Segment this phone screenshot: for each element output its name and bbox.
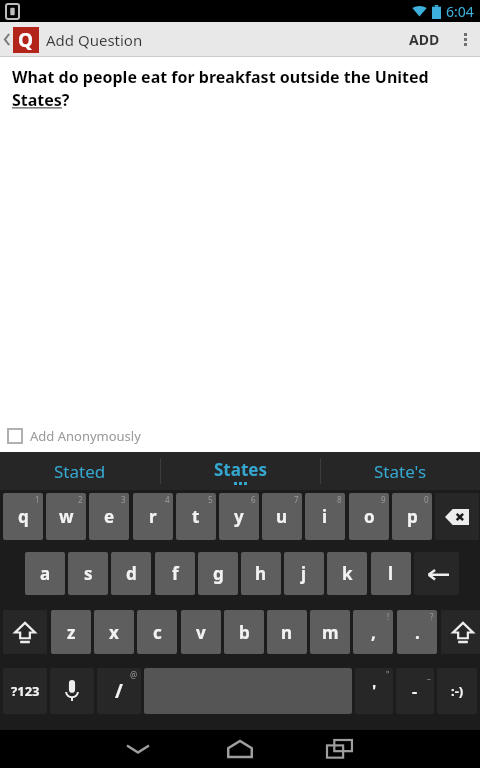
staticText: 8 <box>337 494 342 505</box>
staticText: / <box>115 678 123 704</box>
staticText: :-) <box>451 682 464 700</box>
button[interactable]: u <box>262 493 302 540</box>
button[interactable]: l <box>371 552 411 595</box>
staticText: Add Question <box>46 30 143 50</box>
button[interactable]: v <box>181 610 221 654</box>
button[interactable]: j <box>284 552 324 595</box>
button[interactable]: y <box>219 493 259 540</box>
button[interactable]: Shift <box>441 610 480 654</box>
staticText: States <box>214 458 267 481</box>
staticText: j <box>301 562 307 585</box>
staticText: m <box>322 621 339 644</box>
button[interactable]: h <box>241 552 281 595</box>
button[interactable]: Backspace <box>435 493 479 540</box>
staticText: d <box>126 562 137 585</box>
button[interactable]: Voice input <box>50 668 94 714</box>
button[interactable]: f <box>155 552 195 595</box>
staticText: y <box>234 505 244 528</box>
staticText: s <box>84 562 93 585</box>
staticText: Stated <box>54 460 106 483</box>
button[interactable]: i <box>305 493 345 540</box>
button[interactable]: w <box>46 493 86 540</box>
staticText: 5 <box>208 494 213 505</box>
button[interactable]: State's <box>320 452 480 490</box>
button[interactable]: b <box>224 610 264 654</box>
staticText: q <box>18 505 29 528</box>
staticText: _ <box>427 669 431 680</box>
button[interactable]: c <box>137 610 177 654</box>
staticText: z <box>67 621 76 644</box>
staticText: Add Anonymously <box>30 427 141 445</box>
button[interactable]: x <box>94 610 134 654</box>
staticText: @ <box>130 669 138 680</box>
staticText: p <box>407 505 418 528</box>
button[interactable]: g <box>198 552 238 595</box>
button[interactable]: p <box>392 493 432 540</box>
staticText: g <box>213 562 224 585</box>
staticText: u <box>276 505 288 528</box>
staticText: What do people eat for breakfast outside… <box>12 66 462 111</box>
button[interactable]: ADD <box>409 30 440 49</box>
button[interactable]: / <box>97 668 141 714</box>
button[interactable]: Hide keyboard <box>108 730 168 768</box>
button[interactable]: k <box>327 552 367 595</box>
button[interactable]: r <box>133 493 173 540</box>
staticText: " <box>386 669 390 680</box>
staticText: ? <box>430 611 434 622</box>
staticText: c <box>153 621 162 644</box>
button[interactable]: t <box>176 493 216 540</box>
button[interactable]: :-) <box>437 668 477 714</box>
button[interactable]: Add Anonymously <box>0 424 480 448</box>
staticText: f <box>172 562 179 585</box>
staticText: 1 <box>35 494 40 505</box>
staticText: t <box>192 505 200 528</box>
button[interactable]: Quora <box>13 27 39 53</box>
staticText: 6:04 <box>446 2 474 21</box>
staticText: h <box>255 562 267 585</box>
button[interactable]: z <box>51 610 91 654</box>
button[interactable]: Recent apps <box>310 730 370 768</box>
staticText: i <box>322 505 328 528</box>
button[interactable]: Back <box>0 22 14 57</box>
staticText: 9 <box>381 494 386 505</box>
staticText: ' <box>372 680 377 702</box>
staticText: l <box>388 562 394 585</box>
button[interactable]: States <box>160 452 320 490</box>
button[interactable]: ' <box>355 668 393 714</box>
staticText: 6 <box>251 494 256 505</box>
staticText: . <box>415 621 420 644</box>
button[interactable]: Shift <box>3 610 47 654</box>
staticText: o <box>364 505 375 528</box>
button[interactable]: . <box>397 610 437 654</box>
button[interactable]: ?123 <box>3 668 47 714</box>
button[interactable]: e <box>89 493 129 540</box>
staticText: k <box>342 562 353 585</box>
button[interactable]: s <box>68 552 108 595</box>
button[interactable]: - <box>396 668 434 714</box>
staticText: State's <box>374 460 427 483</box>
staticText: b <box>239 621 250 644</box>
button[interactable]: n <box>267 610 307 654</box>
button[interactable]: Stated <box>0 452 160 490</box>
staticText: w <box>59 505 74 528</box>
button[interactable]: m <box>310 610 350 654</box>
button[interactable]: Home <box>210 730 270 768</box>
staticText: 7 <box>294 494 299 505</box>
staticText: v <box>196 621 206 644</box>
staticText: ?123 <box>11 682 40 700</box>
button[interactable]: More options <box>450 22 480 57</box>
button[interactable]: d <box>111 552 151 595</box>
button[interactable]: q <box>3 493 43 540</box>
button[interactable]: a <box>25 552 65 595</box>
staticText: 0 <box>424 494 429 505</box>
staticText: x <box>109 621 119 644</box>
button[interactable]: Enter <box>414 552 459 595</box>
button[interactable]: o <box>349 493 389 540</box>
staticText: n <box>281 621 293 644</box>
staticText: r <box>149 505 157 528</box>
staticText: 2 <box>78 494 83 505</box>
staticText: , <box>371 621 376 644</box>
button[interactable]: , <box>353 610 393 654</box>
staticText: e <box>104 505 115 528</box>
